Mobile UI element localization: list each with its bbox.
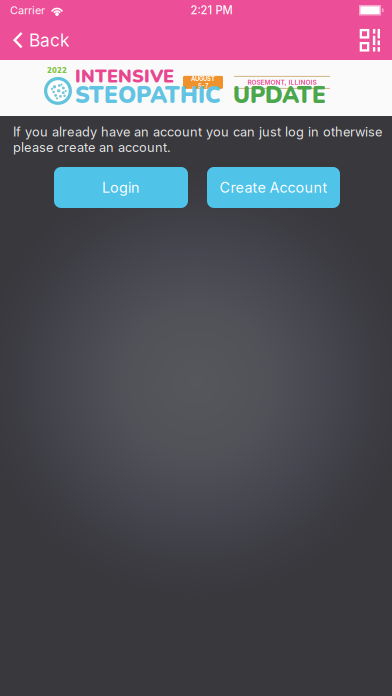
staticText: Login bbox=[102, 179, 140, 196]
button[interactable]: Scan QR code bbox=[346, 22, 392, 58]
staticText: If you already have an account you can j… bbox=[13, 124, 382, 155]
staticText: 5-7 bbox=[198, 82, 208, 89]
button[interactable]: Create Account bbox=[207, 167, 340, 208]
staticText: AUGUST bbox=[191, 75, 215, 82]
staticText: Create Account bbox=[219, 179, 327, 196]
staticText: ROSEMONT, ILLINOIS bbox=[247, 78, 316, 86]
staticText: INTENSIVE bbox=[75, 64, 174, 89]
staticText: 2022 bbox=[47, 65, 67, 76]
button[interactable]: Back bbox=[0, 22, 84, 59]
staticText: UPDATE bbox=[233, 80, 326, 111]
staticText: Carrier bbox=[10, 4, 45, 17]
staticText: STEOPATHIC bbox=[75, 80, 221, 111]
staticText: Back bbox=[29, 30, 70, 51]
button[interactable]: Login bbox=[54, 167, 188, 208]
staticText: 2:21 PM bbox=[190, 3, 232, 17]
